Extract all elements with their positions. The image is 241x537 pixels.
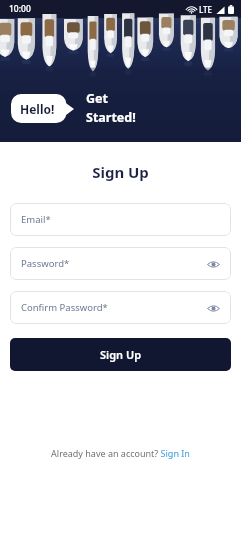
staticText: 10:00 xyxy=(9,3,31,15)
button[interactable]: Show password xyxy=(205,256,221,272)
button[interactable]: Password* xyxy=(10,247,231,280)
staticText: Hello! xyxy=(20,101,55,117)
staticText: Get xyxy=(86,90,108,107)
staticText: Email* xyxy=(21,213,51,226)
staticText: Started! xyxy=(86,109,136,126)
staticText: Sign Up xyxy=(100,347,142,362)
button[interactable]: Confirm Password* xyxy=(10,291,231,324)
staticText: LTE xyxy=(199,4,213,15)
button[interactable]: Email* xyxy=(10,203,231,236)
staticText: Confirm Password* xyxy=(21,301,108,314)
staticText: Sign Up xyxy=(0,162,241,182)
button[interactable]: Already have an account? Sign In xyxy=(0,447,241,459)
button[interactable]: Sign Up xyxy=(10,338,231,371)
staticText: Already have an account? Sign In xyxy=(51,447,190,459)
button[interactable]: Show password xyxy=(205,300,221,316)
staticText: Password* xyxy=(21,257,70,270)
